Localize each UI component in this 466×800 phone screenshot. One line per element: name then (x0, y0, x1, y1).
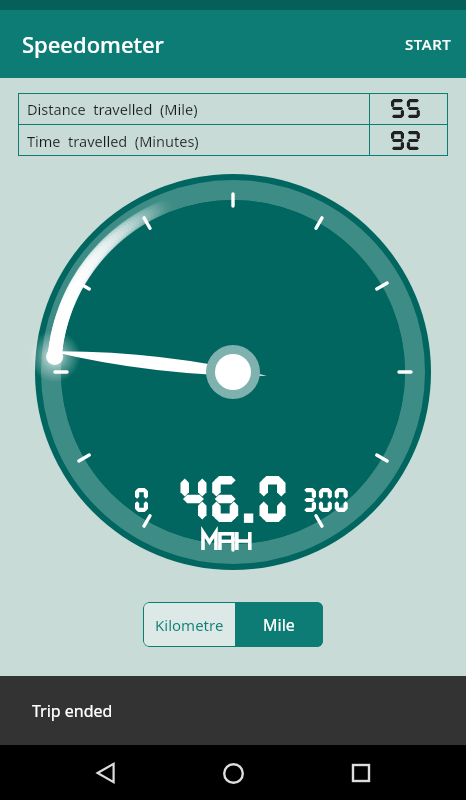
button[interactable]: Mile (235, 602, 323, 647)
button[interactable]: Trip ended (0, 676, 466, 745)
staticText: Mile (263, 614, 295, 636)
button[interactable]: Kilometre (143, 602, 235, 647)
button[interactable]: Distance travelled (Mile) (18, 93, 448, 124)
staticText: Trip ended (32, 700, 113, 722)
staticText: Time travelled (Minutes) (27, 131, 199, 151)
staticText: START (405, 34, 452, 54)
button[interactable]: START (391, 24, 466, 64)
button[interactable]: Back (84, 751, 128, 795)
button[interactable]: Recents (339, 751, 383, 795)
staticText: Speedometer (22, 29, 164, 59)
staticText: Kilometre (155, 615, 224, 635)
staticText: Distance travelled (Mile) (27, 99, 198, 119)
button[interactable]: Home (211, 751, 255, 795)
button[interactable]: Time travelled (Minutes) (18, 125, 448, 156)
